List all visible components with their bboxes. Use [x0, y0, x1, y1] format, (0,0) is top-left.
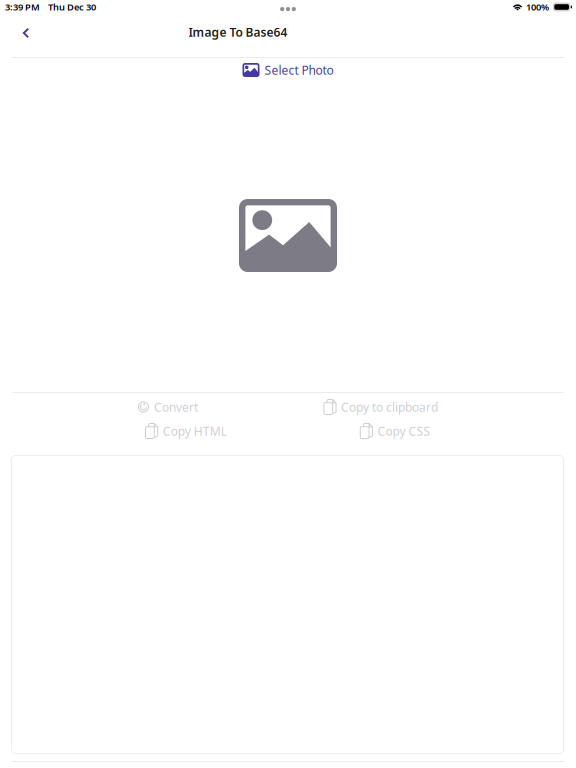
staticText: 100%	[526, 1, 549, 13]
staticText: Thu Dec 30	[48, 1, 96, 13]
staticText: Convert	[154, 399, 198, 415]
staticText: Copy CSS	[377, 423, 430, 439]
button[interactable]: Copy to clipboard	[324, 397, 438, 417]
staticText: Copy to clipboard	[341, 399, 438, 415]
button[interactable]: Back	[11, 18, 41, 48]
staticText: Select Photo	[264, 62, 333, 78]
staticText: 3:39 PM	[5, 1, 40, 13]
button[interactable]: Copy CSS	[360, 421, 430, 441]
staticText: Copy HTML	[163, 423, 227, 439]
button[interactable]: Select Photo	[233, 59, 343, 81]
button[interactable]: Copy HTML	[145, 421, 227, 441]
staticText: Image To Base64	[188, 24, 287, 40]
button[interactable]: Convert	[138, 397, 198, 417]
